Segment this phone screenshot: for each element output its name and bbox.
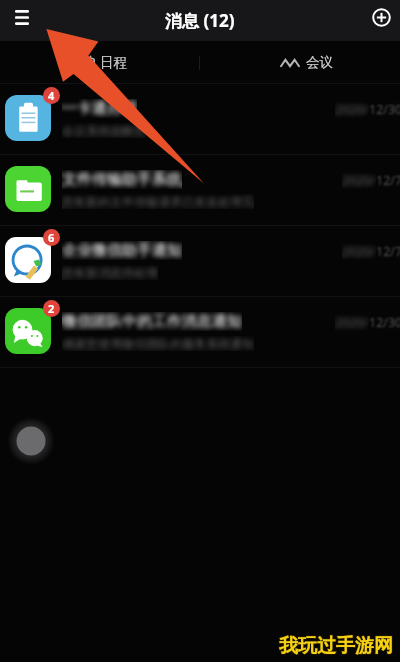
- button[interactable]: 文件传输助手系统: [0, 155, 400, 226]
- staticText: 2020/: [342, 172, 376, 189]
- button[interactable]: Add: [368, 4, 395, 31]
- staticText: 文件传输助手系统: [62, 170, 182, 189]
- staticText: 感谢您使用微信团队的服务系统通知: [62, 336, 254, 351]
- staticText: 会议: [306, 54, 333, 71]
- staticText: 6: [48, 230, 55, 245]
- staticText: 会议系统提醒您: [62, 123, 146, 138]
- staticText: 我玩过手游网: [280, 633, 394, 657]
- button[interactable]: 6: [0, 226, 400, 297]
- staticText: 我玩过手游网: [279, 633, 393, 657]
- staticText: 企业微信助手通知: [62, 241, 182, 260]
- staticText: 我玩过手游网: [280, 634, 394, 658]
- staticText: 我玩过手游网: [278, 635, 392, 659]
- staticText: 我玩过手游网: [279, 635, 393, 659]
- staticText: 您有新消息待处理: [62, 265, 158, 280]
- staticText: 微信团队中的工作消息通知: [62, 312, 242, 331]
- staticText: 2: [48, 301, 55, 316]
- button[interactable]: 4: [0, 84, 400, 155]
- staticText: 12/7: [376, 243, 400, 260]
- staticText: 12/30: [369, 314, 400, 331]
- staticText: 12/30: [369, 101, 400, 118]
- button[interactable]: Menu: [7, 2, 37, 32]
- staticText: 2020/: [335, 101, 369, 118]
- staticText: 我玩过手游网: [279, 634, 393, 658]
- button[interactable]: 会议: [200, 41, 400, 84]
- staticText: 2020/: [335, 314, 369, 331]
- staticText: 2020/: [342, 243, 376, 260]
- staticText: 4: [48, 88, 55, 103]
- staticText: 我玩过手游网: [278, 633, 392, 657]
- staticText: 我玩过手游网: [280, 635, 394, 659]
- button[interactable]: 2: [0, 297, 400, 368]
- staticText: 您有新的文件传输请求已发送处理完: [62, 194, 254, 209]
- staticText: 一卡通办理: [62, 99, 137, 118]
- staticText: 消息 (12): [165, 9, 235, 32]
- staticText: 我玩过手游网: [278, 634, 392, 658]
- button[interactable]: Assistive touch: [9, 419, 53, 463]
- button[interactable]: 日程: [0, 41, 199, 84]
- staticText: 日程: [100, 54, 127, 71]
- staticText: 12/7: [376, 172, 400, 189]
